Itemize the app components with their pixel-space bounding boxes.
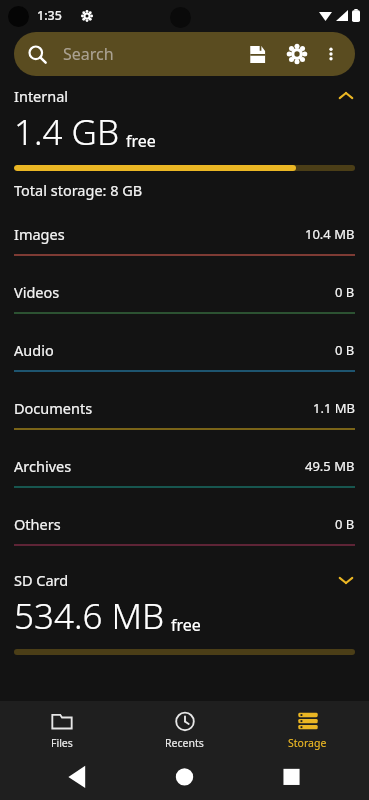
staticText: 0 B bbox=[335, 283, 355, 301]
staticText: 49.5 MB bbox=[305, 457, 355, 475]
button[interactable]: Others bbox=[0, 504, 369, 562]
staticText: 0 B bbox=[335, 515, 355, 533]
staticText: Audio bbox=[14, 340, 54, 360]
staticText: 1:35 bbox=[37, 7, 62, 24]
button[interactable]: Scan document bbox=[239, 36, 275, 72]
staticText: Internal bbox=[14, 86, 69, 106]
staticText: Archives bbox=[14, 456, 72, 476]
button[interactable]: SD Card bbox=[0, 570, 369, 655]
button[interactable]: Search bbox=[14, 32, 355, 76]
button[interactable]: Storage bbox=[246, 701, 369, 758]
staticText: Others bbox=[14, 514, 61, 534]
staticText: Videos bbox=[14, 282, 60, 302]
button[interactable]: Files bbox=[0, 701, 123, 758]
staticText: 1.4 GB bbox=[14, 108, 120, 156]
staticText: Total storage: 8 GB bbox=[14, 180, 143, 200]
staticText: free bbox=[171, 614, 201, 636]
staticText: Search bbox=[63, 43, 114, 65]
button[interactable]: More options bbox=[315, 38, 347, 70]
button[interactable]: Settings bbox=[279, 36, 315, 72]
staticText: 10.4 MB bbox=[305, 225, 355, 243]
button[interactable]: Internal bbox=[0, 86, 369, 200]
staticText: 1.1 MB bbox=[313, 399, 355, 417]
staticText: SD Card bbox=[14, 570, 69, 590]
staticText: Images bbox=[14, 224, 65, 244]
staticText: 534.6 MB bbox=[14, 592, 165, 640]
button[interactable]: Archives bbox=[0, 446, 369, 504]
staticText: free bbox=[126, 130, 156, 152]
button[interactable]: Videos bbox=[0, 272, 369, 330]
staticText: 0 B bbox=[335, 341, 355, 359]
staticText: Files bbox=[51, 736, 73, 750]
button[interactable]: Images bbox=[0, 214, 369, 272]
staticText: Recents bbox=[165, 736, 204, 750]
staticText: Storage bbox=[288, 736, 327, 750]
staticText: Documents bbox=[14, 398, 93, 418]
button[interactable]: Audio bbox=[0, 330, 369, 388]
button[interactable]: Documents bbox=[0, 388, 369, 446]
button[interactable]: Recents bbox=[123, 701, 246, 758]
